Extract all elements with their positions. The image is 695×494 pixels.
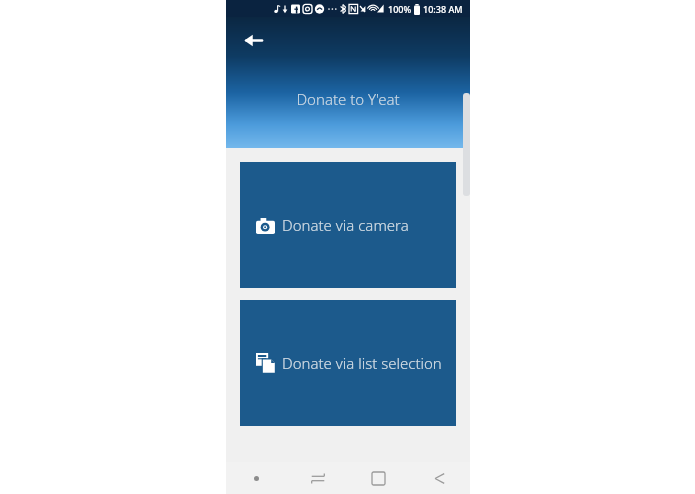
button[interactable]: Donate via list selection: [240, 300, 456, 426]
staticText: Donate to Y'eat: [226, 89, 470, 109]
button[interactable]: Menu: [226, 462, 287, 494]
staticText: 100%: [388, 3, 412, 15]
button[interactable]: Back: [409, 462, 470, 494]
button[interactable]: Donate via camera: [240, 162, 456, 288]
button[interactable]: Home: [348, 462, 409, 494]
staticText: Donate via list selection: [282, 353, 442, 373]
button[interactable]: Recents: [287, 462, 348, 494]
staticText: 10:38 AM: [423, 3, 463, 15]
button[interactable]: Back: [236, 23, 270, 57]
staticText: Donate via camera: [282, 215, 409, 235]
